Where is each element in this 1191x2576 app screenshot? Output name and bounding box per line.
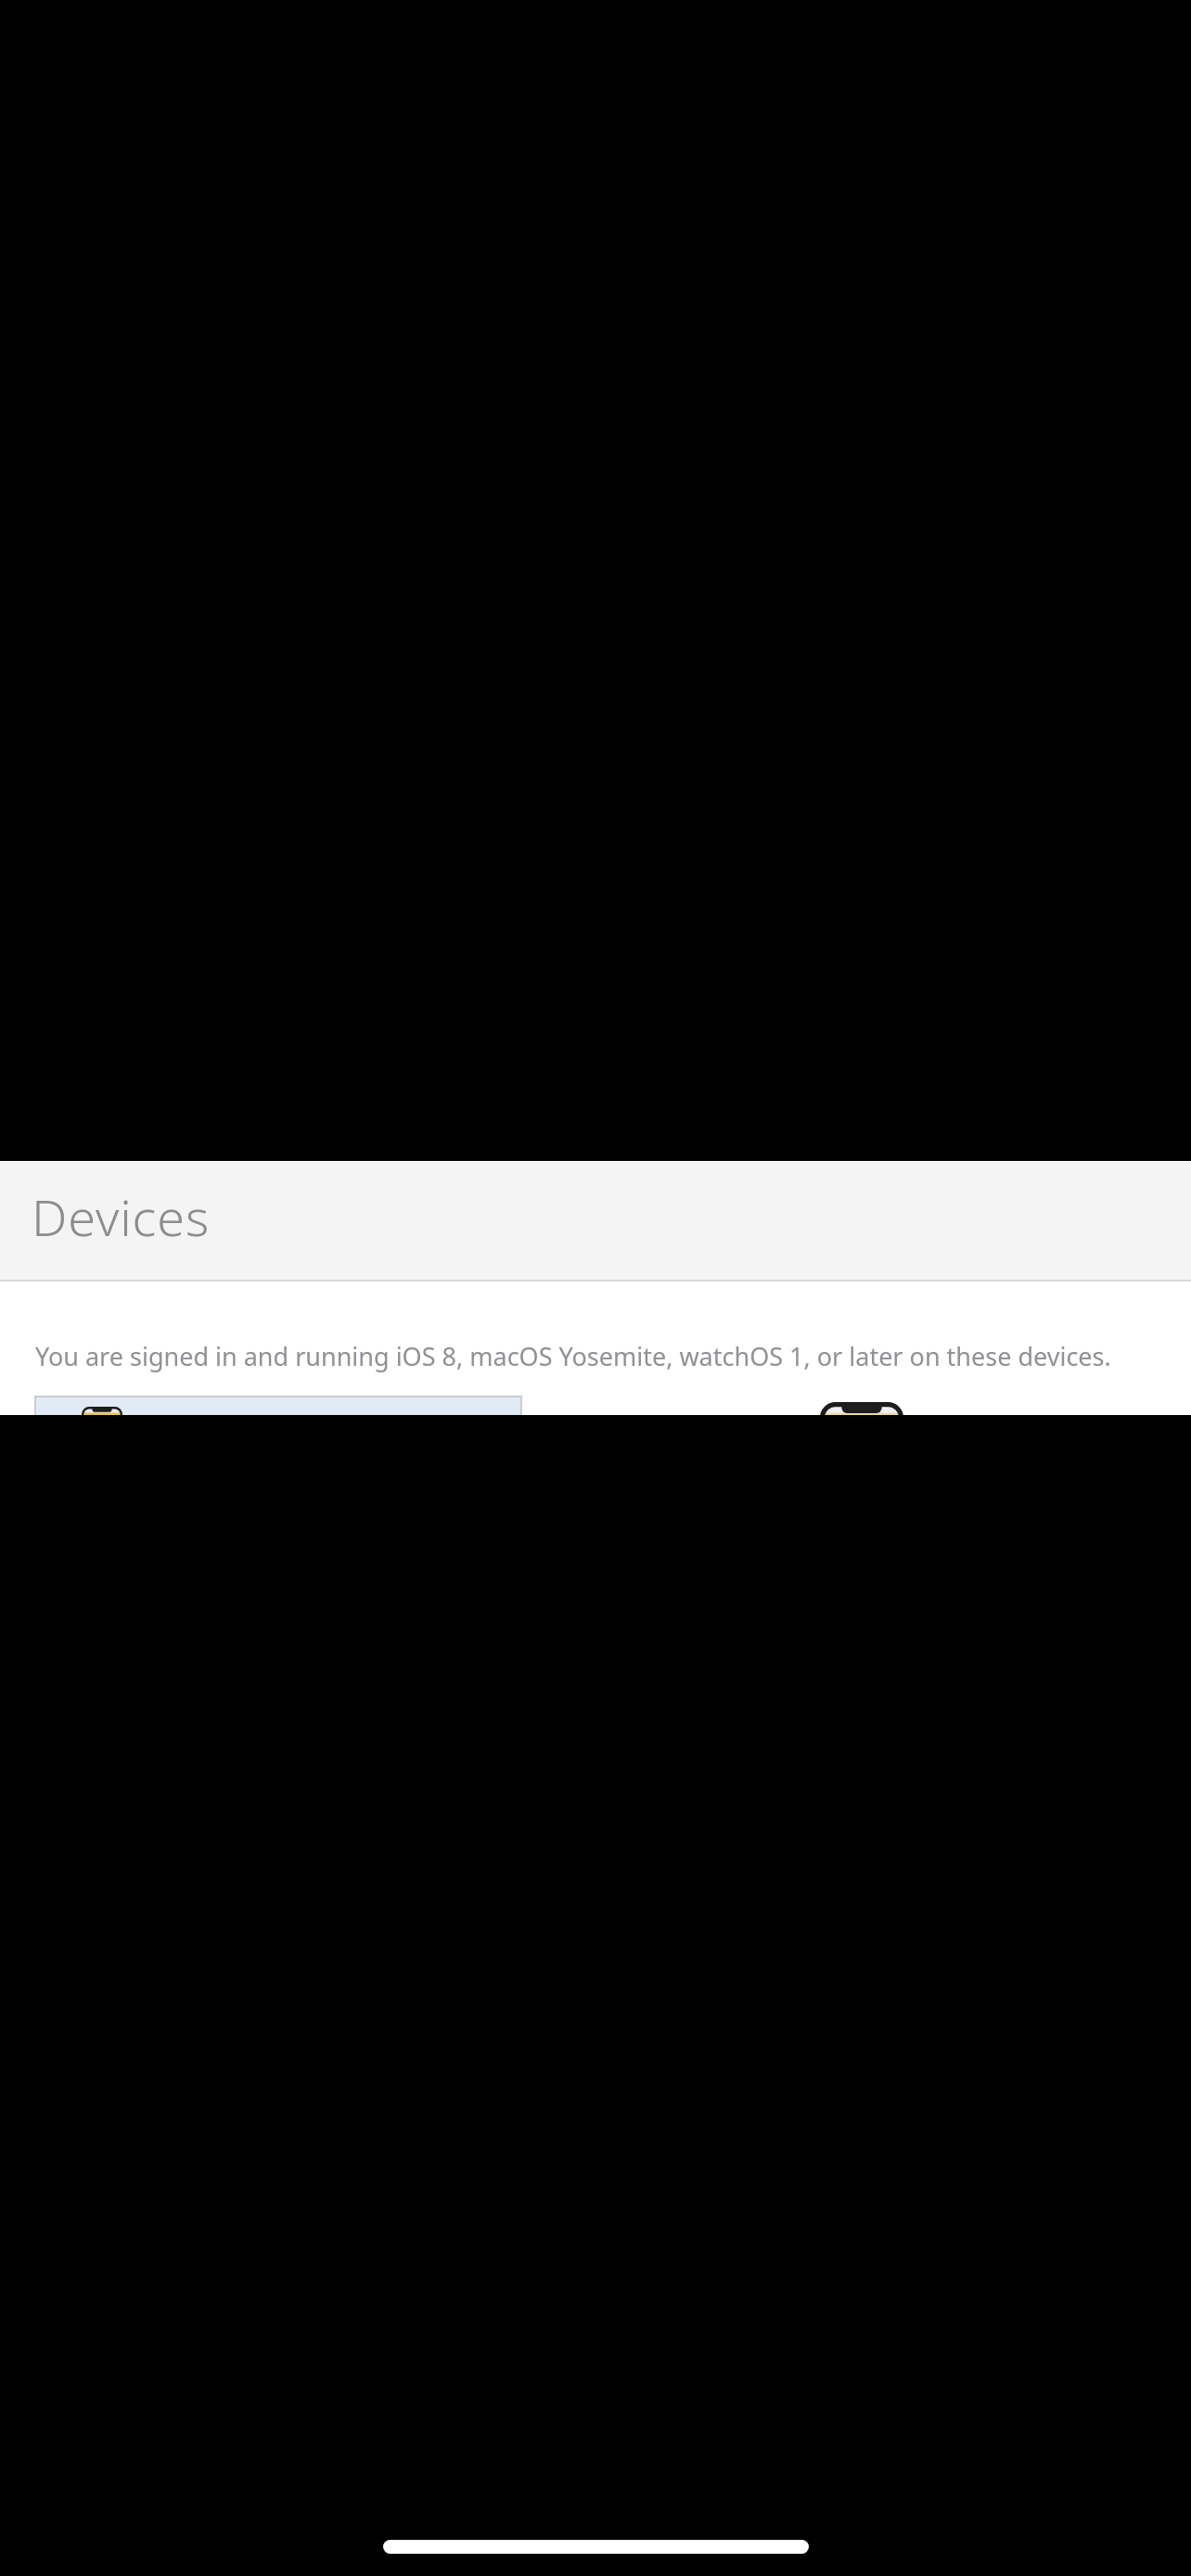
button[interactable]: iPhone, this device: [34, 1396, 522, 1415]
staticText: You are signed in and running iOS 8, mac…: [35, 1339, 1111, 1373]
staticText: Devices: [32, 1182, 211, 1251]
button[interactable]: Devices: [0, 1162, 1191, 1280]
button[interactable]: iPhone: [557, 1396, 1159, 1415]
